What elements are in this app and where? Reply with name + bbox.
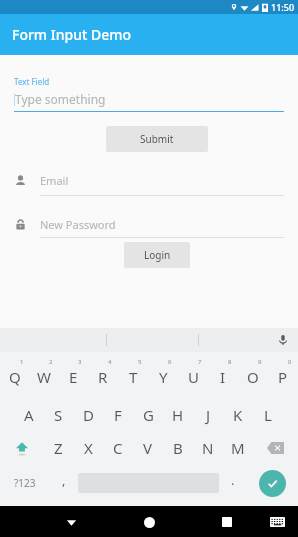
button[interactable]: Submit bbox=[106, 126, 208, 152]
staticText: D bbox=[83, 405, 94, 425]
button[interactable]: 9 bbox=[238, 352, 268, 399]
staticText: , bbox=[62, 471, 66, 489]
staticText: Text Field bbox=[14, 76, 50, 87]
button[interactable]: New Password bbox=[14, 217, 284, 232]
button[interactable]: Type something bbox=[14, 91, 284, 107]
button[interactable]: 3 bbox=[58, 352, 88, 399]
button[interactable]: B bbox=[163, 431, 193, 464]
staticText: X bbox=[84, 438, 93, 458]
staticText: R bbox=[98, 367, 108, 387]
staticText: O bbox=[247, 367, 259, 387]
staticText: F bbox=[114, 405, 122, 425]
button[interactable]: , bbox=[50, 464, 78, 502]
staticText: 5 bbox=[138, 358, 142, 366]
staticText: . bbox=[231, 471, 235, 489]
staticText: 4 bbox=[108, 358, 112, 366]
staticText: C bbox=[113, 438, 123, 458]
staticText: 8 bbox=[228, 358, 232, 366]
staticText: Form Input Demo bbox=[12, 25, 132, 44]
button[interactable]: ?123 bbox=[0, 464, 50, 502]
staticText: I bbox=[220, 367, 226, 387]
button[interactable]: G bbox=[133, 399, 163, 431]
staticText: V bbox=[143, 438, 153, 458]
button[interactable]: . bbox=[219, 464, 247, 502]
button[interactable]: 8 bbox=[208, 352, 238, 399]
button[interactable]: Email bbox=[14, 173, 284, 188]
staticText: Email bbox=[40, 173, 69, 188]
staticText: H bbox=[172, 405, 184, 425]
staticText: 2 bbox=[49, 358, 53, 366]
staticText: 0 bbox=[288, 358, 292, 366]
button[interactable]: D bbox=[73, 399, 103, 431]
button[interactable]: 7 bbox=[178, 352, 208, 399]
button[interactable]: Voice input bbox=[274, 331, 292, 349]
staticText: Submit bbox=[140, 132, 174, 146]
staticText: M bbox=[231, 438, 245, 458]
button[interactable]: M bbox=[223, 431, 253, 464]
staticText: 7 bbox=[198, 358, 202, 366]
button[interactable]: Login bbox=[124, 242, 190, 268]
button[interactable]: V bbox=[133, 431, 163, 464]
staticText: E bbox=[69, 367, 78, 387]
button[interactable]: C bbox=[103, 431, 133, 464]
staticText: U bbox=[188, 367, 199, 387]
staticText: 9 bbox=[258, 358, 262, 366]
button[interactable]: Keyboard bbox=[264, 509, 290, 535]
staticText: P bbox=[278, 367, 288, 387]
button[interactable]: Enter bbox=[259, 470, 286, 497]
button[interactable]: F bbox=[103, 399, 133, 431]
button[interactable]: 4 bbox=[88, 352, 118, 399]
staticText: Q bbox=[9, 367, 21, 387]
button[interactable]: H bbox=[163, 399, 193, 431]
button[interactable]: Back bbox=[57, 508, 85, 536]
button[interactable]: Backspace bbox=[253, 431, 298, 464]
staticText: G bbox=[143, 405, 154, 425]
staticText: K bbox=[233, 405, 243, 425]
button[interactable]: 6 bbox=[148, 352, 178, 399]
staticText: N bbox=[202, 438, 214, 458]
staticText: 6 bbox=[168, 358, 172, 366]
staticText: 3 bbox=[78, 358, 82, 366]
staticText: J bbox=[206, 405, 211, 425]
staticText: Z bbox=[54, 438, 63, 458]
button[interactable]: 1 bbox=[0, 352, 29, 399]
button[interactable]: 2 bbox=[29, 352, 58, 399]
staticText: Login bbox=[144, 248, 171, 262]
staticText: B bbox=[173, 438, 183, 458]
staticText: T bbox=[129, 367, 138, 387]
button[interactable]: A bbox=[14, 399, 43, 431]
staticText: 11:50 bbox=[271, 1, 295, 13]
button[interactable]: L bbox=[253, 399, 283, 431]
staticText: Y bbox=[159, 367, 168, 387]
button[interactable]: 5 bbox=[118, 352, 148, 399]
button[interactable]: Z bbox=[44, 431, 73, 464]
staticText: New Password bbox=[40, 217, 116, 232]
button[interactable]: Recents bbox=[213, 508, 241, 536]
button[interactable]: 0 bbox=[268, 352, 298, 399]
staticText: S bbox=[54, 405, 63, 425]
staticText: 1 bbox=[20, 358, 24, 366]
staticText: Type something bbox=[15, 91, 106, 107]
button[interactable]: S bbox=[43, 399, 73, 431]
button[interactable]: Shift bbox=[0, 431, 44, 464]
staticText: L bbox=[264, 405, 272, 425]
button[interactable]: K bbox=[223, 399, 253, 431]
button[interactable]: Home bbox=[135, 508, 163, 536]
button[interactable]: J bbox=[193, 399, 223, 431]
staticText: A bbox=[24, 405, 34, 425]
staticText: ?123 bbox=[14, 476, 36, 490]
button[interactable]: X bbox=[73, 431, 103, 464]
button[interactable]: N bbox=[193, 431, 223, 464]
staticText: W bbox=[37, 367, 51, 387]
